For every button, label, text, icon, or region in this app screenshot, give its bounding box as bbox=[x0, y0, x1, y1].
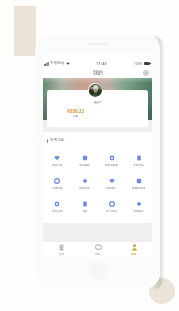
staticText: 我的优惠券 bbox=[105, 163, 118, 166]
staticText: 我的钱包 bbox=[79, 163, 90, 166]
staticText: 收藏的店铺 bbox=[132, 186, 145, 189]
button[interactable]: Settings bbox=[141, 68, 150, 77]
staticText: 话费充值 bbox=[52, 186, 63, 189]
button[interactable]: 首页 bbox=[43, 242, 80, 257]
staticText: 100% bbox=[134, 62, 143, 66]
button[interactable]: 收藏的店铺 bbox=[125, 172, 152, 195]
staticText: 11:43 bbox=[96, 61, 107, 67]
staticText: 我的积分 bbox=[106, 186, 117, 189]
button[interactable]: 网络交易 bbox=[71, 172, 98, 195]
staticText: 网络交易 bbox=[79, 186, 90, 189]
staticText: 余额 bbox=[73, 114, 79, 117]
staticText: 智能家居 bbox=[133, 209, 144, 212]
staticText: 用户 bbox=[94, 100, 102, 105]
staticText: 学习培训 bbox=[106, 209, 117, 212]
button[interactable]: ¥636.22 bbox=[65, 108, 87, 117]
staticText: 消息 bbox=[95, 252, 101, 255]
button[interactable]: 消息 bbox=[80, 242, 116, 257]
button[interactable]: 我的订单 bbox=[43, 149, 71, 172]
staticText: 常用功能 bbox=[50, 138, 65, 143]
button[interactable]: 智能家居 bbox=[125, 195, 152, 218]
button[interactable]: 话费充值 bbox=[43, 172, 71, 195]
button[interactable]: 手机充值 bbox=[125, 149, 152, 172]
staticText: 首页 bbox=[59, 252, 65, 255]
button[interactable]: 学习培训 bbox=[98, 195, 125, 218]
button[interactable]: 我的 bbox=[116, 242, 152, 257]
staticText: 安装交易 bbox=[52, 209, 63, 212]
staticText: 我的订单 bbox=[52, 163, 63, 166]
button[interactable]: 安装交易 bbox=[43, 195, 71, 218]
staticText: 中国移动 bbox=[50, 61, 65, 66]
button[interactable]: 我的钱包 bbox=[71, 149, 98, 172]
staticText: 手机充值 bbox=[133, 163, 144, 166]
button[interactable]: 我的优惠券 bbox=[98, 149, 125, 172]
staticText: 我的 bbox=[93, 69, 103, 75]
staticText: 评价 bbox=[82, 209, 88, 212]
button[interactable]: 评价 bbox=[71, 195, 98, 218]
staticText: ¥636.22 bbox=[67, 108, 85, 114]
button[interactable]: 我的积分 bbox=[98, 172, 125, 195]
staticText: 我的 bbox=[131, 252, 137, 255]
